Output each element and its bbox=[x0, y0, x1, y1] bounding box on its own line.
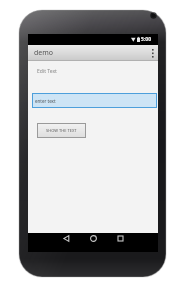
staticText: 5:00 bbox=[141, 36, 151, 43]
staticText: SHOW THE TEXT bbox=[46, 128, 77, 133]
button[interactable] bbox=[148, 45, 158, 61]
button[interactable]: SHOW THE TEXT bbox=[37, 123, 86, 138]
button[interactable] bbox=[107, 233, 134, 243]
button[interactable] bbox=[53, 233, 80, 243]
button[interactable]: enter text bbox=[32, 93, 157, 108]
staticText: Edit Text bbox=[37, 68, 57, 75]
button[interactable] bbox=[80, 233, 107, 243]
staticText: demo bbox=[34, 48, 54, 58]
staticText: enter text bbox=[35, 98, 56, 104]
